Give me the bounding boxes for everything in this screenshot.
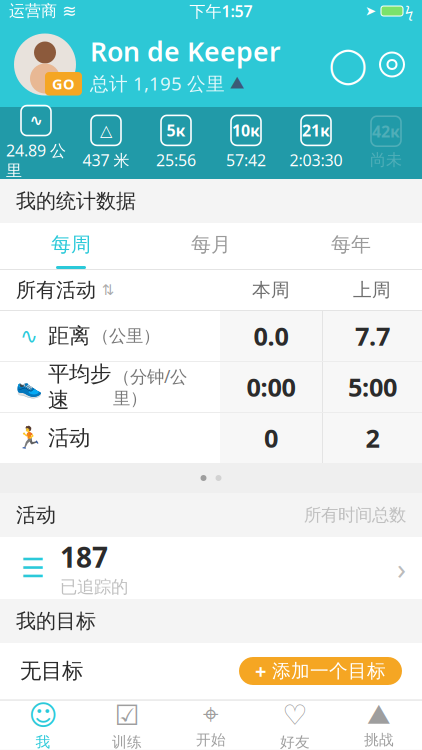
staticText: 24.89 公里 [6,139,66,180]
staticText: 添加一个目标 [272,659,386,682]
staticText: ⇅ [102,282,114,298]
staticText: 10к [232,120,260,141]
staticText: 0.0 [253,319,288,353]
staticText: 所有活动 [16,278,96,302]
staticText: › [397,548,406,587]
staticText: 57:42 [226,149,266,171]
staticText: ◯ [328,45,367,84]
staticText: 42к [372,120,400,142]
staticText: 我 [35,733,50,750]
button[interactable]: ⛰ [337,701,421,750]
staticText: ⛰ [230,75,245,92]
staticText: ⌖ [203,702,219,729]
staticText: ⛰ [367,702,391,729]
staticText: 我的目标 [16,609,96,633]
staticText: ☺ [28,699,57,731]
button[interactable]: 设置 [370,42,414,86]
staticText: 每年 [331,232,371,257]
staticText: ∿ [29,111,42,130]
button[interactable]: △ [71,113,141,173]
staticText: 21к [302,120,330,141]
staticText: 0 [264,421,278,455]
staticText: 挑战 [364,731,394,749]
staticText: ≋ [62,1,77,21]
button[interactable]: 21к [281,113,351,173]
staticText: ∿ [20,324,38,348]
staticText: 尚未 [370,150,402,170]
staticText: 所有时间总数 [304,504,406,526]
staticText: 运营商 [9,1,57,21]
staticText: （分钟/公里） [113,365,187,409]
staticText: 187 [60,538,108,575]
staticText: 开始 [196,731,226,749]
staticText: 0:00 [246,370,295,404]
staticText: ϟ [405,1,413,21]
button[interactable]: 每年 [281,223,421,269]
button[interactable]: ☰ [0,537,422,599]
staticText: 距离 [48,323,90,349]
button[interactable]: 每月 [141,223,281,269]
button[interactable]: ☺ [1,701,85,750]
staticText: 本周 [252,278,290,301]
button[interactable]: 每周 [1,223,141,269]
staticText: 平均步速 [48,361,111,413]
staticText: 训练 [112,733,142,750]
staticText: 每周 [51,232,91,257]
staticText: ➤ [365,3,376,18]
staticText: 下午1:57 [189,0,252,22]
staticText: 好友 [280,733,310,750]
staticText: 5:00 [348,370,397,404]
staticText: ♡ [282,699,307,731]
staticText: 437 米 [82,149,129,171]
button[interactable]: 所有活动 [0,270,220,310]
button[interactable]: 5к [141,113,211,173]
button[interactable]: ⌖ [169,701,253,750]
staticText: （公里） [92,325,160,347]
staticText: ☰ [21,553,45,583]
staticText: 我的统计数据 [16,189,136,213]
staticText: △ [100,121,112,139]
staticText: 2 [365,421,379,455]
button[interactable]: ∿ [1,113,71,173]
staticText: 每月 [191,232,231,257]
staticText: + [255,658,266,684]
staticText: 活动 [48,425,90,451]
staticText: 25:56 [156,149,196,171]
staticText: 2:03:30 [289,149,342,171]
button[interactable]: 搜索 [326,42,370,86]
button[interactable]: + [239,657,402,685]
staticText: 👟 [15,375,42,399]
staticText: GO [52,74,75,93]
staticText: 7.7 [355,319,390,353]
staticText: 无目标 [20,658,83,684]
staticText: ☑ [114,699,139,731]
staticText: 5к [166,120,185,141]
staticText: 已追踪的 [60,576,128,598]
button[interactable]: 10к [211,113,281,173]
staticText: 上周 [353,278,391,301]
staticText: Ron de Keeper [90,33,281,69]
button[interactable]: ☑ [85,701,169,750]
staticText: 总计 1,195 公里 [90,71,225,96]
staticText: 活动 [16,503,56,527]
button[interactable]: 42к [351,113,421,173]
staticText: 🏃 [15,426,42,450]
button[interactable]: ♡ [253,701,337,750]
